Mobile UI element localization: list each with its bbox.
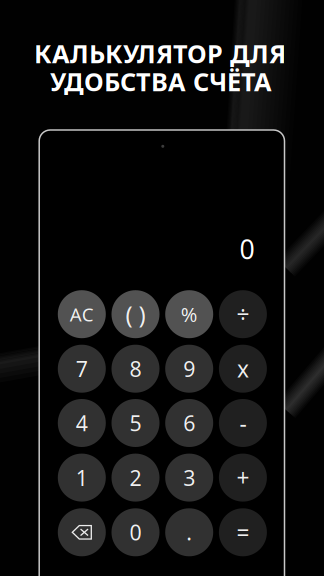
button[interactable]: AC <box>58 290 106 338</box>
button[interactable]: 8 <box>111 345 159 393</box>
staticText: КАЛЬКУЛЯТОР ДЛЯ <box>34 37 286 70</box>
staticText: 9 <box>183 354 195 383</box>
button[interactable]: 1 <box>58 454 106 502</box>
staticText: AC <box>70 302 94 327</box>
button[interactable]: . <box>165 508 213 556</box>
button[interactable]: 3 <box>165 454 213 502</box>
button[interactable]: 4 <box>58 399 106 447</box>
button[interactable]: % <box>165 290 213 338</box>
staticText: 2 <box>129 463 141 492</box>
button[interactable]: 2 <box>111 454 159 502</box>
staticText: 1 <box>76 463 88 492</box>
staticText: УДОБСТВА СЧЁТА <box>50 65 272 98</box>
staticText: ÷ <box>236 299 249 329</box>
button[interactable]: Delete <box>58 508 106 556</box>
button[interactable]: 7 <box>58 345 106 393</box>
button[interactable]: 9 <box>165 345 213 393</box>
button[interactable]: = <box>219 508 267 556</box>
button[interactable]: + <box>219 454 267 502</box>
staticText: . <box>186 518 192 546</box>
staticText: % <box>181 301 198 327</box>
staticText: = <box>236 517 249 547</box>
button[interactable]: x <box>219 345 267 393</box>
staticText: 6 <box>183 409 195 437</box>
staticText: ( ) <box>125 298 145 330</box>
button[interactable]: - <box>219 399 267 447</box>
staticText: + <box>236 462 249 493</box>
staticText: 7 <box>76 354 88 383</box>
staticText: 0 <box>239 231 254 267</box>
staticText: 3 <box>183 463 195 492</box>
staticText: x <box>237 354 249 384</box>
button[interactable]: ( ) <box>111 290 159 338</box>
button[interactable]: 6 <box>165 399 213 447</box>
button[interactable]: 0 <box>111 508 159 556</box>
button[interactable]: ÷ <box>219 290 267 338</box>
staticText: 4 <box>76 409 88 437</box>
staticText: 8 <box>129 354 141 383</box>
button[interactable]: 5 <box>111 399 159 447</box>
staticText: 5 <box>129 409 141 437</box>
staticText: - <box>239 408 246 438</box>
staticText: 0 <box>129 518 141 546</box>
